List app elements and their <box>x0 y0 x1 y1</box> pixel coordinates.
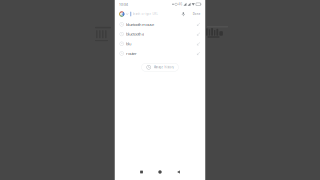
button[interactable]: Voice search <box>181 12 186 16</box>
button[interactable]: Done <box>186 12 201 16</box>
staticText: 10:04 <box>119 2 128 7</box>
button[interactable]: bluetooth a <box>115 29 205 39</box>
staticText: Done <box>193 12 201 16</box>
button[interactable]: Home <box>158 170 162 174</box>
staticText: router <box>126 51 137 56</box>
staticText: 4G <box>178 2 182 6</box>
button[interactable]: bluetooth mouse <box>115 19 205 29</box>
staticText: blu <box>126 41 131 46</box>
staticText: Search or type URL <box>133 12 158 16</box>
staticText: bluetooth a <box>126 31 144 37</box>
button[interactable]: router <box>115 49 205 58</box>
staticText: bluetooth mouse <box>126 22 154 27</box>
staticText: Manage history <box>153 65 173 69</box>
button[interactable]: Manage history <box>141 63 178 71</box>
button[interactable]: blu <box>115 39 205 49</box>
button[interactable]: Recent apps <box>140 171 143 173</box>
button[interactable]: Back <box>177 170 180 174</box>
